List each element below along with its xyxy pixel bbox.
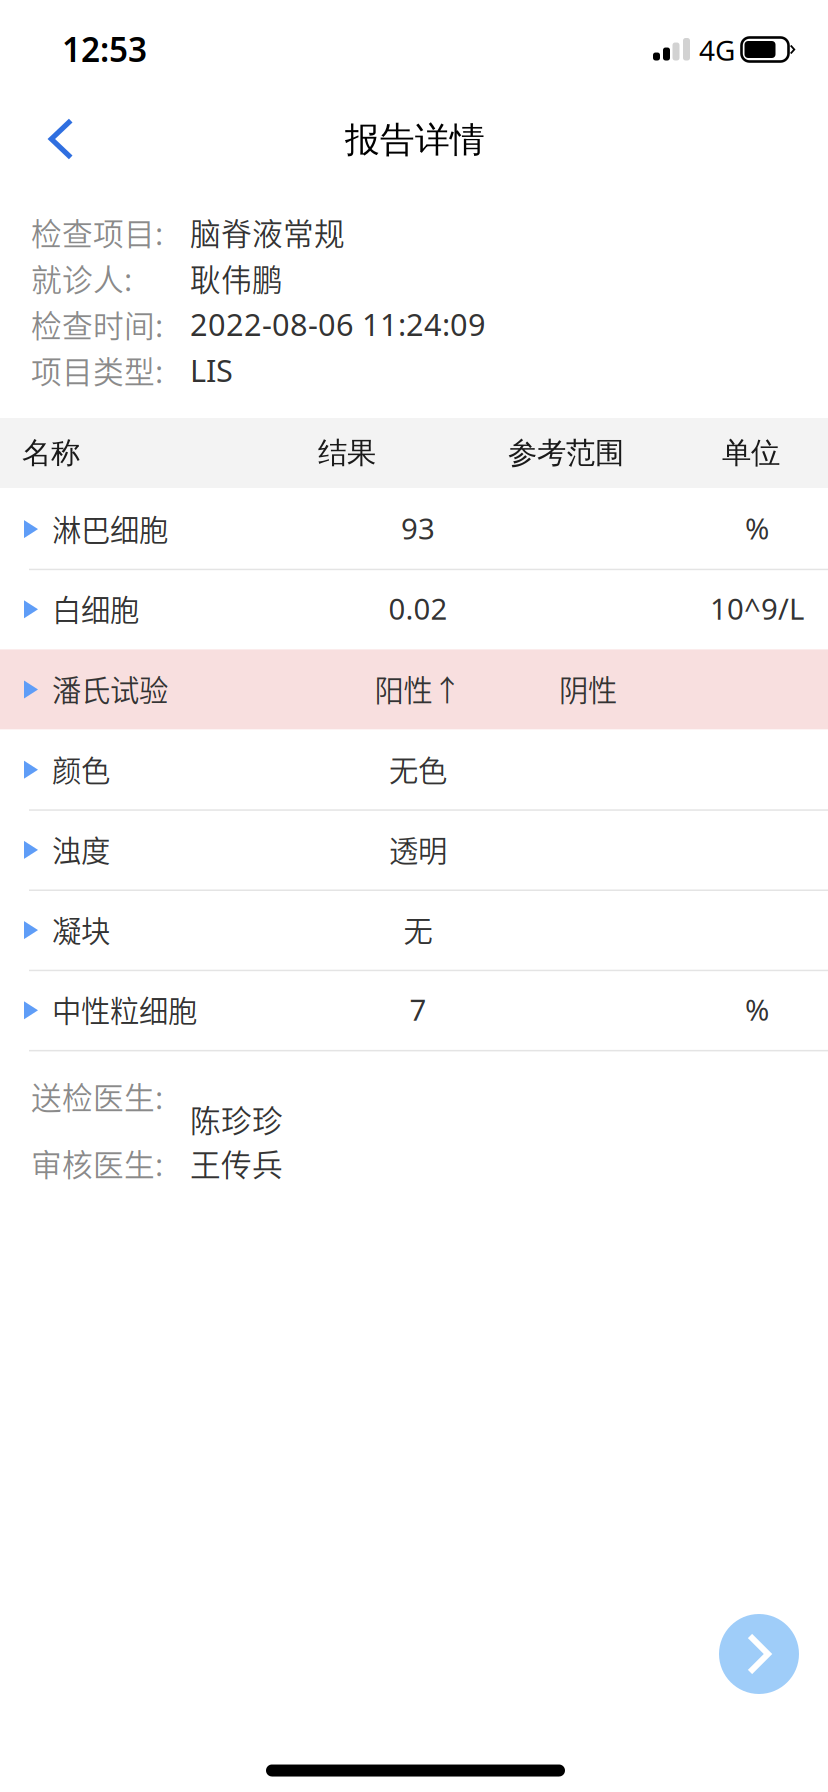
staticText: 透明 <box>389 828 447 870</box>
staticText: 项目类型: <box>31 348 163 392</box>
staticText: 耿伟鹏 <box>190 256 283 300</box>
staticText: 王传兵 <box>190 1141 283 1185</box>
button[interactable]: Next <box>719 1614 799 1694</box>
staticText: 93 <box>401 508 435 548</box>
button[interactable]: 潘氏试验 <box>0 0 828 1792</box>
staticText: 参考范围 <box>508 435 624 471</box>
staticText: 名称 <box>22 435 80 471</box>
button[interactable]: 浊度 <box>0 0 828 1792</box>
staticText: 2022-08-06 11:24:09 <box>190 303 486 345</box>
staticText: 颜色 <box>52 747 110 790</box>
staticText: 报告详情 <box>345 119 485 161</box>
button[interactable]: 中性粒细胞 <box>0 0 828 1792</box>
staticText: 白细胞 <box>52 587 139 630</box>
staticText: 淋巴细胞 <box>52 507 168 549</box>
staticText: 阳性↑ <box>374 667 461 710</box>
staticText: 中性粒细胞 <box>52 988 197 1031</box>
staticText: % <box>745 989 769 1029</box>
staticText: 浊度 <box>52 828 110 870</box>
button[interactable]: 淋巴细胞 <box>0 0 828 1792</box>
staticText: 无 <box>403 908 432 950</box>
staticText: 就诊人: <box>31 256 132 300</box>
staticText: 检查项目: <box>31 210 163 254</box>
staticText: 凝块 <box>52 908 110 950</box>
button[interactable]: 白细胞 <box>0 0 828 1792</box>
button[interactable]: 凝块 <box>0 0 828 1792</box>
staticText: 单位 <box>722 435 780 471</box>
button[interactable]: 颜色 <box>0 0 828 1792</box>
staticText: 0.02 <box>388 588 447 628</box>
button[interactable]: Back <box>13 95 109 183</box>
staticText: 陈珍珍 <box>190 1097 283 1141</box>
staticText: 脑脊液常规 <box>190 210 345 254</box>
staticText: LIS <box>190 349 233 391</box>
staticText: 7 <box>409 989 426 1029</box>
staticText: 结果 <box>318 435 376 471</box>
staticText: 检查时间: <box>31 302 163 346</box>
staticText: % <box>745 508 769 548</box>
staticText: 审核医生: <box>31 1141 163 1185</box>
staticText: 送检医生: <box>31 1074 163 1118</box>
staticText: 4G <box>699 31 735 69</box>
staticText: 无色 <box>389 747 447 790</box>
staticText: 阴性 <box>559 667 617 710</box>
staticText: 潘氏试验 <box>52 667 168 710</box>
staticText: 12:53 <box>62 27 147 71</box>
staticText: 10^9/L <box>710 588 804 628</box>
